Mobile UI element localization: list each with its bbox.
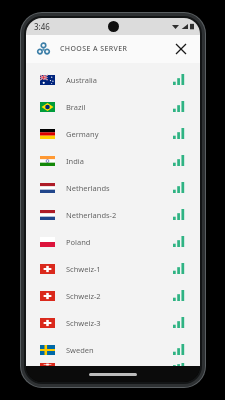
staticText: India xyxy=(66,156,84,166)
button[interactable]: App logo xyxy=(35,41,51,57)
button[interactable]: India xyxy=(26,147,200,174)
staticText: Netherlands-2 xyxy=(66,210,117,220)
button[interactable]: Close xyxy=(171,39,191,59)
button[interactable]: Schweiz-3 xyxy=(26,309,200,336)
button[interactable]: Brazil xyxy=(26,93,200,120)
staticText: Poland xyxy=(66,237,91,247)
staticText: Brazil xyxy=(66,102,86,112)
button[interactable]: Germany xyxy=(26,120,200,147)
button[interactable]: Netherlands xyxy=(26,174,200,201)
button[interactable]: Schweiz-2 xyxy=(26,282,200,309)
button[interactable]: Poland xyxy=(26,228,200,255)
staticText: Australia xyxy=(66,75,97,85)
staticText: Netherlands xyxy=(66,183,110,193)
staticText: Schweiz-2 xyxy=(66,291,101,301)
button[interactable]: Netherlands-2 xyxy=(26,201,200,228)
staticText: Germany xyxy=(66,129,99,139)
button[interactable]: Australia xyxy=(26,66,200,93)
button[interactable]: Sweden xyxy=(26,336,200,363)
staticText: CHOOSE A SERVER xyxy=(60,44,128,54)
staticText: 3:46 xyxy=(34,21,50,32)
button[interactable]: Schweiz-1 xyxy=(26,255,200,282)
staticText: Schweiz-3 xyxy=(66,318,101,328)
staticText: Schweiz-1 xyxy=(66,264,101,274)
button[interactable]: Home gesture xyxy=(89,373,137,376)
button[interactable]: Switzerland xyxy=(26,363,200,366)
staticText: Sweden xyxy=(66,345,94,355)
